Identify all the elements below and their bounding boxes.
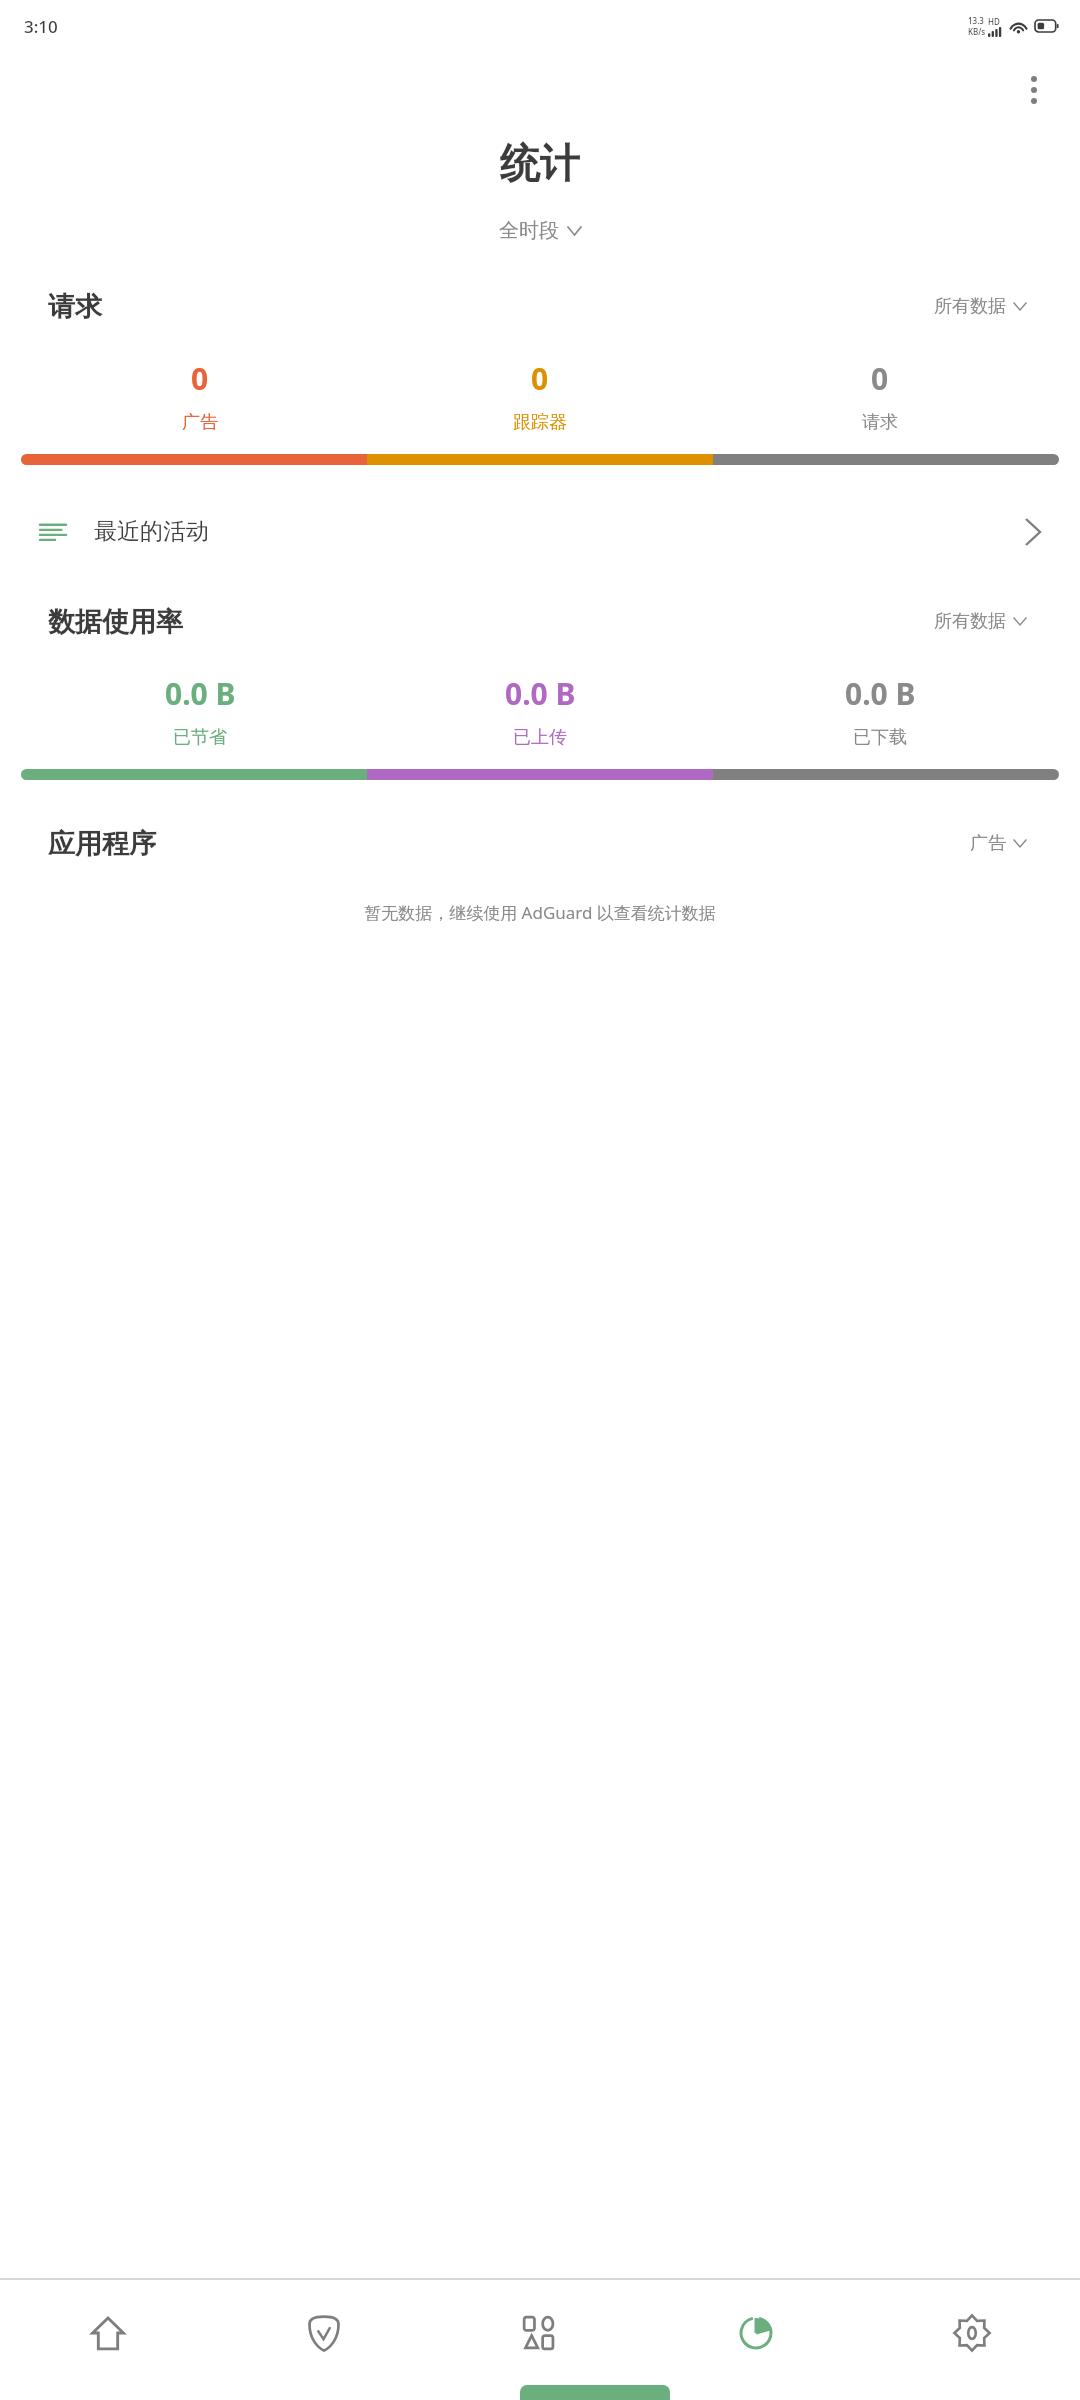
staticText: 已上传 [513,726,567,749]
staticText: 全时段 [499,218,559,243]
staticText: 所有数据 [934,295,1006,318]
staticText: 请求 [48,290,102,324]
staticText: 广告 [182,411,218,434]
staticText: 0.0 B [505,673,576,714]
staticText: KB/s [968,26,986,37]
staticText: 0 [531,358,549,399]
button[interactable]: Home [0,2280,216,2385]
staticText: 已下载 [853,726,907,749]
button[interactable]: 0.0 B [30,673,370,749]
staticText: 暂无数据，继续使用 AdGuard 以查看统计数据 [0,901,1080,924]
button[interactable]: Apps [432,2280,648,2385]
staticText: 所有数据 [934,610,1006,633]
button[interactable]: 广告 [964,826,1032,861]
staticText: 13.3 [968,15,984,26]
button[interactable]: 最近的活动 [0,511,1080,552]
staticText: HD [988,16,1000,27]
button[interactable]: More options [1010,66,1058,114]
staticText: 应用程序 [48,827,156,861]
staticText: 最近的活动 [94,517,209,546]
button[interactable]: 0 [30,358,370,434]
button[interactable]: Settings [864,2280,1080,2385]
staticText: 请求 [862,411,898,434]
staticText: 统计 [500,138,580,188]
button[interactable]: 所有数据 [928,289,1032,324]
button[interactable]: 0.0 B [370,673,710,749]
staticText: 数据使用率 [48,605,183,639]
staticText: 0 [871,358,889,399]
staticText: 广告 [970,832,1006,855]
staticText: 0 [191,358,209,399]
button[interactable]: 0.0 B [710,673,1050,749]
button[interactable]: Protection [216,2280,432,2385]
staticText: 0.0 B [165,673,236,714]
staticText: 跟踪器 [513,411,567,434]
staticText: 已节省 [173,726,227,749]
button[interactable]: 所有数据 [928,604,1032,639]
button[interactable]: 0 [370,358,710,434]
button[interactable]: 全时段 [491,214,589,247]
staticText: 3:10 [24,15,58,38]
button[interactable]: Statistics [648,2280,864,2385]
button[interactable]: 0 [710,358,1050,434]
staticText: 0.0 B [845,673,916,714]
